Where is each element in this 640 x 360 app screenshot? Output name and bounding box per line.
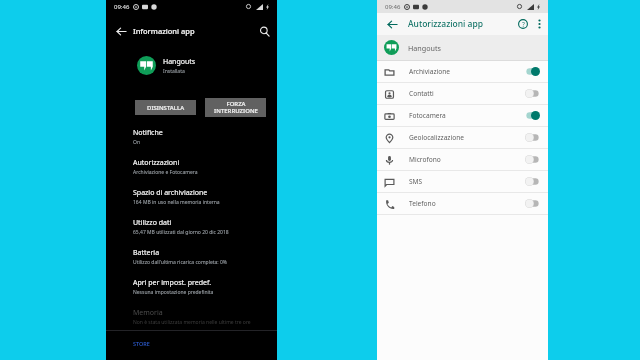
staticText: STORE [133, 340, 150, 347]
staticText: Geolocalizzazione [409, 133, 464, 142]
button[interactable]: Autorizzazioni [106, 155, 277, 185]
button[interactable]: DISINSTALLA [135, 100, 196, 115]
button[interactable]: Back [385, 17, 399, 31]
staticText: Contatti [409, 89, 434, 98]
button[interactable]: Fotocamera [377, 105, 548, 126]
staticText: Batteria [133, 248, 160, 258]
button[interactable]: SMS [377, 171, 548, 192]
staticText: Archiviazione e Fotocamera [133, 169, 198, 176]
button[interactable]: Spazio di archiviazione [106, 185, 277, 215]
staticText: Hangouts [163, 57, 196, 67]
staticText: Autorizzazioni app [408, 18, 483, 30]
button[interactable]: Back [114, 24, 128, 38]
staticText: Memoria [133, 308, 163, 318]
staticText: Microfono [409, 155, 441, 164]
staticText: Informazioni app [133, 26, 195, 36]
staticText: Fotocamera [409, 111, 446, 120]
button[interactable]: Search [256, 23, 272, 39]
staticText: Notifiche [133, 128, 163, 138]
staticText: DISINSTALLA [147, 104, 185, 112]
button[interactable]: Utilizzo dati [106, 215, 277, 245]
button[interactable]: Microfono [377, 149, 548, 170]
staticText: Telefono [409, 199, 436, 208]
button[interactable]: More options [532, 17, 546, 31]
staticText: Autorizzazioni [133, 158, 180, 168]
button[interactable]: Geolocalizzazione [377, 127, 548, 148]
staticText: Nessuna impostazione predefinita [133, 289, 214, 296]
staticText: Utilizzo dati [133, 218, 172, 228]
staticText: Hangouts [408, 43, 442, 53]
staticText: ? [522, 20, 525, 29]
staticText: Installata [163, 68, 185, 75]
staticText: Apri per impost. predef. [133, 278, 212, 288]
button[interactable]: FORZA INTERRUZIONE [205, 98, 266, 117]
staticText: SMS [409, 177, 423, 186]
staticText: Spazio di archiviazione [133, 188, 208, 198]
button[interactable]: Contatti [377, 83, 548, 104]
button[interactable]: Memoria [106, 305, 277, 335]
staticText: 164 MB in uso nella memoria interna [133, 199, 220, 206]
button[interactable]: STORE [131, 339, 152, 348]
staticText: Non è stata utilizzata memoria nelle ult… [133, 319, 251, 326]
staticText: 65,47 MB utilizzati dal giorno 20 dic 20… [133, 229, 229, 236]
staticText: Utilizzo dall'ultima ricarica completa: … [133, 259, 228, 266]
button[interactable]: Help [516, 17, 530, 31]
staticText: 09:46 [114, 3, 130, 11]
staticText: FORZA INTERRUZIONE [214, 100, 258, 115]
button[interactable]: Archiviazione [377, 61, 548, 82]
button[interactable]: Batteria [106, 245, 277, 275]
staticText: Archiviazione [409, 67, 451, 76]
button[interactable]: Notifiche [106, 125, 277, 155]
staticText: On [133, 139, 140, 146]
staticText: 09:46 [385, 3, 401, 11]
button[interactable]: Telefono [377, 193, 548, 214]
button[interactable]: Apri per impost. predef. [106, 275, 277, 305]
